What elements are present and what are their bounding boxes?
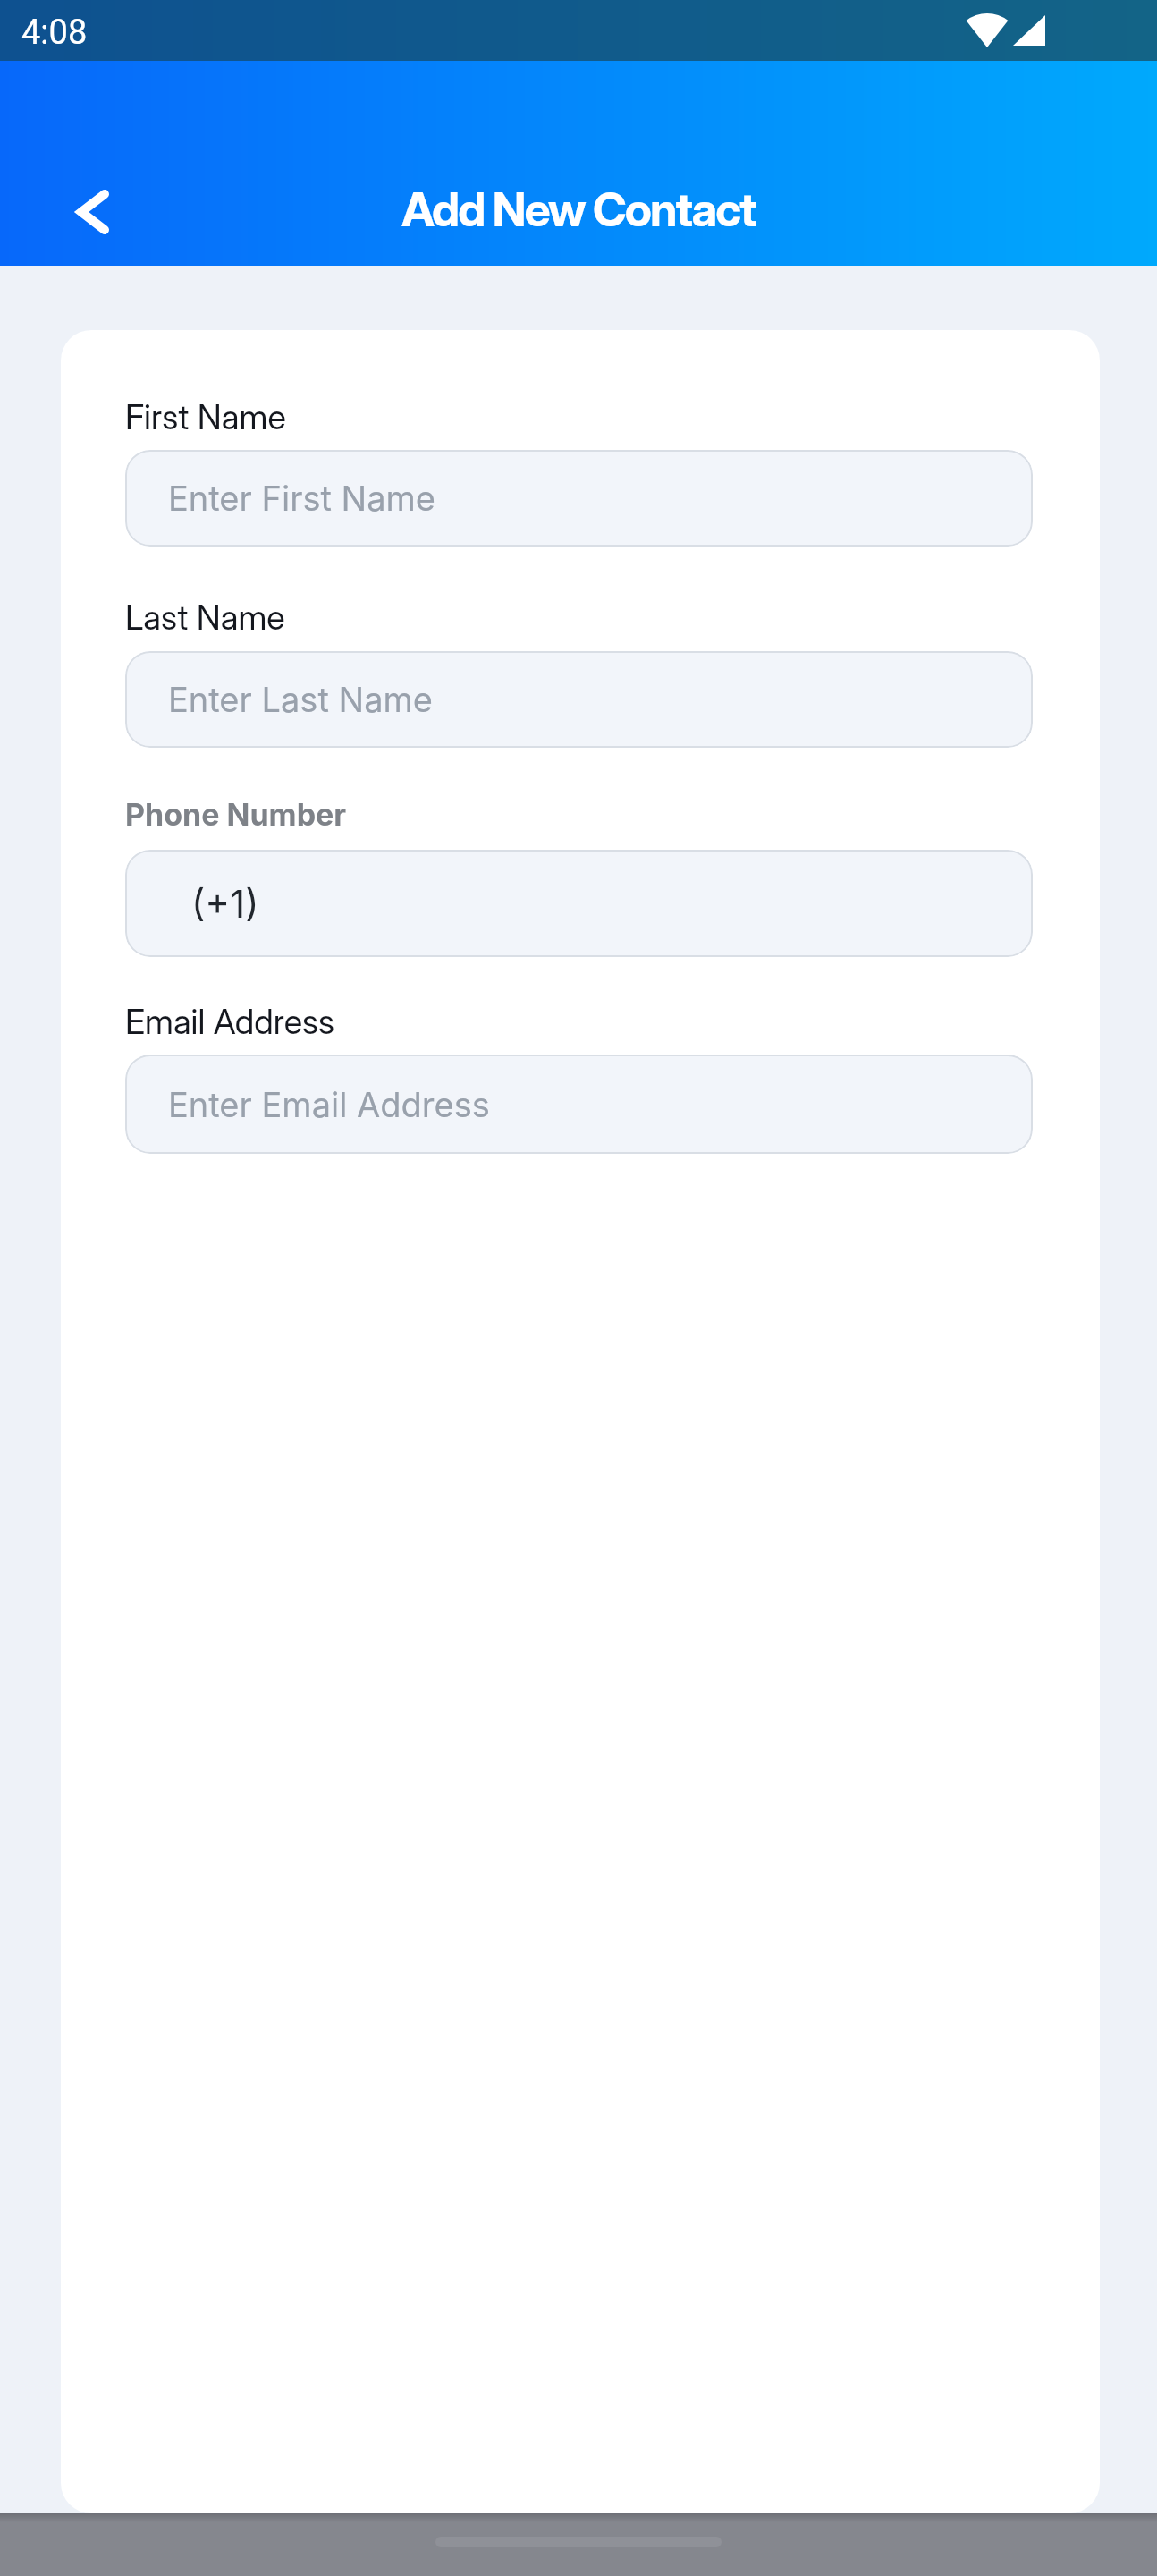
staticText: Last Name [125, 597, 285, 638]
staticText: (+1) [191, 881, 259, 927]
button[interactable]: Enter First Name [125, 450, 1033, 547]
staticText: Phone Number [125, 796, 347, 833]
button[interactable]: Enter Last Name [125, 651, 1033, 748]
staticText: First Name [125, 396, 286, 437]
staticText: Enter Email Address [168, 1084, 490, 1125]
staticText: Add New Contact [401, 182, 756, 238]
button[interactable]: Enter Email Address [125, 1055, 1033, 1154]
button[interactable] [64, 180, 122, 244]
staticText: 4:08 [21, 13, 88, 53]
staticText: Enter Last Name [168, 679, 433, 720]
button[interactable]: (+1) [125, 850, 1033, 957]
staticText: Enter First Name [168, 478, 436, 519]
staticText: Email Address [125, 1001, 335, 1042]
